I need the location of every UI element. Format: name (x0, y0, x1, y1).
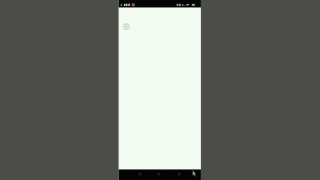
button[interactable]: Back (134, 169, 145, 179)
button[interactable]: Home (153, 169, 164, 179)
button[interactable]: Recents (174, 169, 185, 179)
button[interactable]: Loading (122, 22, 131, 31)
